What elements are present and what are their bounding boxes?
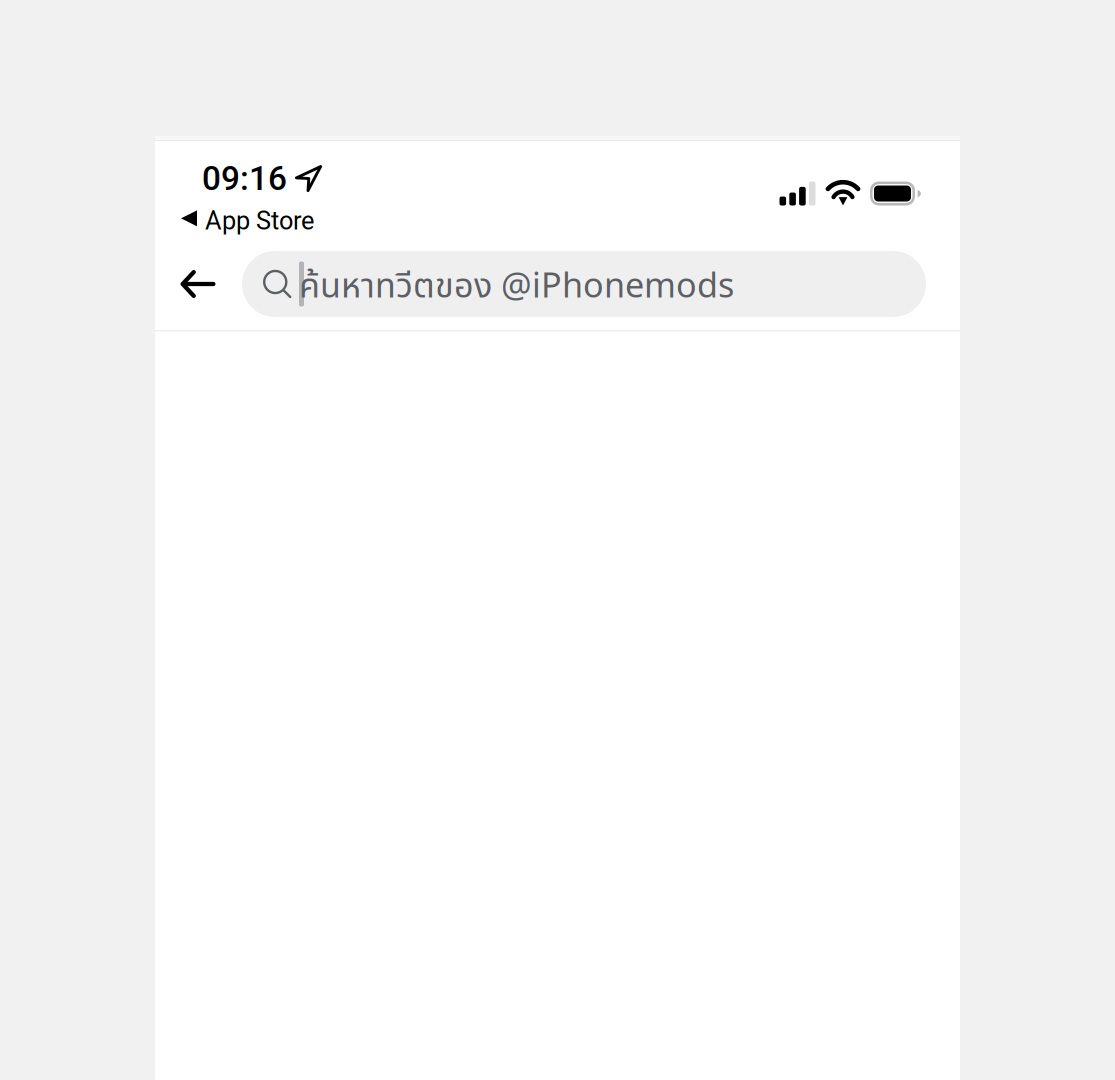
staticText: ค้นหาทวีตของ @iPhonemods: [299, 261, 734, 313]
staticText: 09:16: [202, 159, 287, 198]
button[interactable]: Back: [170, 256, 226, 312]
button[interactable]: ค้นหาทวีตของ @iPhonemods: [242, 251, 926, 317]
button[interactable]: App Store: [179, 203, 316, 239]
staticText: App Store: [205, 206, 314, 236]
